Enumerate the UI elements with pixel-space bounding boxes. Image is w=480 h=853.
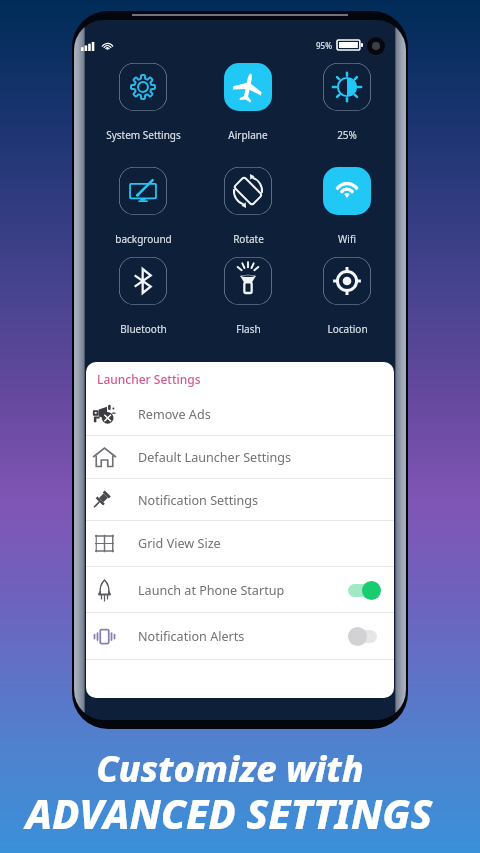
staticText: Wifi (338, 232, 356, 246)
button[interactable]: Launch at Phone Startup (86, 567, 394, 613)
button[interactable]: System Settings (95, 63, 191, 147)
staticText: Notification Settings (138, 492, 259, 509)
button[interactable]: 25% (299, 63, 395, 147)
staticText: 95% (316, 40, 332, 51)
staticText: Notification Alerts (138, 628, 245, 645)
staticText: ADVANCED SETTINGS (0, 786, 469, 841)
button[interactable] (348, 625, 381, 647)
button[interactable]: Default Launcher Settings (86, 436, 394, 478)
button[interactable]: Flash (200, 257, 296, 341)
staticText: Grid View Size (138, 535, 221, 552)
button[interactable]: Airplane (200, 63, 296, 147)
staticText: Airplane (228, 128, 268, 142)
staticText: Bluetooth (120, 322, 167, 336)
staticText: Default Launcher Settings (138, 449, 292, 466)
staticText: Launch at Phone Startup (138, 582, 285, 599)
staticText: 25% (337, 128, 357, 142)
button[interactable]: Location (299, 257, 395, 341)
staticText: System Settings (106, 128, 181, 142)
staticText: Location (327, 322, 368, 336)
button[interactable]: Grid View Size (86, 521, 394, 566)
button[interactable]: Notification Settings (86, 479, 394, 521)
button[interactable] (348, 579, 381, 601)
button[interactable]: Remove Ads (86, 393, 394, 435)
staticText: Flash (236, 322, 261, 336)
staticText: Launcher Settings (97, 371, 201, 387)
button[interactable]: Rotate (200, 167, 296, 251)
staticText: Rotate (233, 232, 264, 246)
staticText: Customize with (0, 744, 470, 793)
staticText: background (115, 232, 172, 246)
staticText: Remove Ads (138, 406, 211, 423)
button[interactable]: background (95, 167, 191, 251)
button[interactable]: Notification Alerts (86, 613, 394, 659)
button[interactable]: Bluetooth (95, 257, 191, 341)
button[interactable]: Wifi (299, 167, 395, 251)
